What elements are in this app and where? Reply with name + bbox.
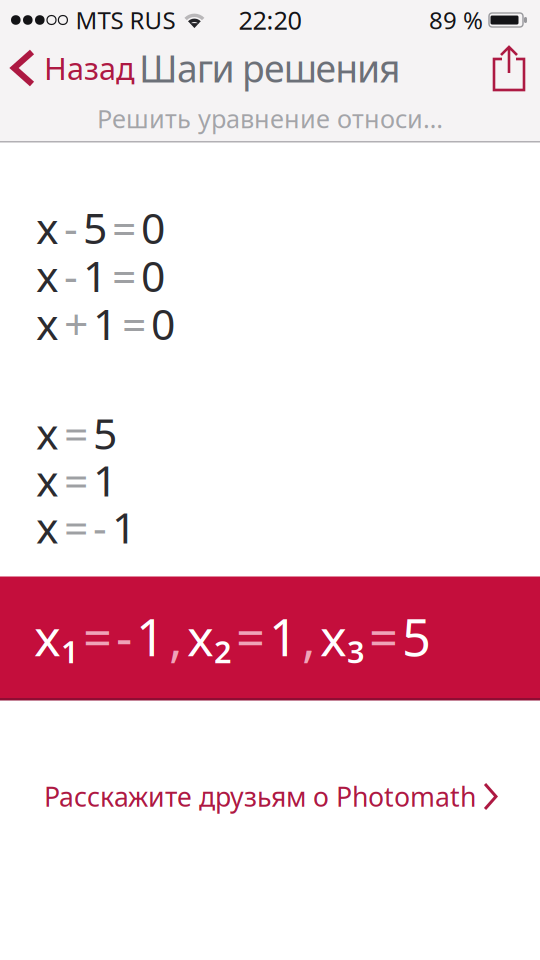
staticText: =: [83, 603, 112, 670]
staticText: ,: [169, 603, 183, 670]
staticText: 1: [136, 603, 165, 670]
staticText: 1: [269, 603, 298, 670]
staticText: 0: [151, 295, 175, 352]
staticText: x: [36, 199, 59, 256]
staticText: x: [36, 295, 59, 352]
staticText: =: [122, 295, 146, 352]
staticText: Шаги решения: [139, 43, 401, 93]
staticText: MTS RUS: [75, 4, 175, 36]
staticText: Назад: [44, 48, 135, 88]
staticText: x: [36, 247, 59, 304]
staticText: =: [64, 452, 88, 508]
staticText: x3: [320, 603, 365, 672]
staticText: -: [64, 199, 78, 256]
staticText: x2: [187, 603, 232, 672]
staticText: =: [236, 603, 265, 670]
staticText: -: [64, 247, 78, 304]
staticText: 1: [112, 499, 136, 555]
staticText: Решить уравнение относи…: [97, 102, 443, 135]
button[interactable]: Назад: [0, 48, 135, 88]
staticText: x: [36, 452, 59, 508]
staticText: =: [369, 603, 398, 670]
staticText: =: [64, 499, 88, 555]
staticText: x: [36, 405, 59, 461]
staticText: Расскажите друзьям о Photomath: [44, 779, 476, 814]
staticText: x: [36, 499, 59, 555]
staticText: 1: [93, 295, 117, 352]
staticText: 5: [402, 603, 431, 670]
staticText: 5: [83, 199, 107, 256]
staticText: x1: [34, 603, 79, 672]
staticText: 0: [141, 199, 165, 256]
staticText: =: [112, 199, 136, 256]
staticText: +: [64, 295, 88, 352]
staticText: -: [93, 499, 107, 555]
staticText: =: [112, 247, 136, 304]
button[interactable]: Расскажите друзьям о Photomath: [44, 778, 496, 814]
staticText: 22:20: [238, 3, 301, 37]
staticText: 0: [141, 247, 165, 304]
staticText: 1: [83, 247, 107, 304]
staticText: 1: [93, 452, 117, 508]
staticText: ,: [302, 603, 316, 670]
button[interactable]: Поделиться: [491, 45, 540, 91]
staticText: 5: [93, 405, 117, 461]
staticText: =: [64, 405, 88, 461]
staticText: 89 %: [429, 4, 483, 36]
staticText: -: [116, 603, 132, 670]
